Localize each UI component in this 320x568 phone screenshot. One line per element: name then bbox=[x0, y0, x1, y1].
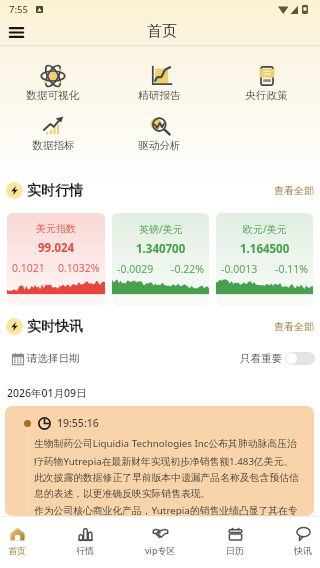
button[interactable]: 快讯 bbox=[293, 527, 313, 556]
staticText: -0.0029 bbox=[117, 262, 154, 276]
staticText: 2026年01月09日 bbox=[7, 386, 87, 400]
button[interactable]: 欧元/美元 bbox=[216, 213, 313, 306]
staticText: 请选择日期 bbox=[27, 352, 80, 365]
staticText: 0.1032% bbox=[58, 261, 100, 275]
staticText: 99.024 bbox=[38, 240, 75, 256]
button[interactable]: 请选择日期 bbox=[12, 352, 80, 365]
button[interactable]: 央行政策 bbox=[213, 66, 320, 102]
staticText: 1.164500 bbox=[240, 241, 290, 257]
button[interactable]: Menu bbox=[4, 20, 28, 44]
staticText: 数据指标 bbox=[32, 139, 75, 152]
staticText: 首页 bbox=[147, 22, 177, 41]
button[interactable]: 日历 bbox=[225, 527, 245, 556]
staticText: 快讯 bbox=[294, 545, 312, 556]
staticText: vip专区 bbox=[145, 544, 176, 556]
button[interactable]: 数据指标 bbox=[0, 116, 106, 152]
staticText: -0.0013 bbox=[221, 262, 258, 276]
staticText: 数据可视化 bbox=[26, 89, 80, 102]
button[interactable]: 19:55:16 bbox=[5, 406, 314, 516]
button[interactable]: 美元指数 bbox=[7, 213, 105, 306]
staticText: 驱动分析 bbox=[138, 139, 181, 152]
staticText: 央行政策 bbox=[245, 89, 288, 102]
staticText: -0.11% bbox=[275, 262, 308, 276]
button[interactable]: vip专区 bbox=[144, 526, 177, 556]
staticText: 生物制药公司Liquidia Technologies Inc公布其肺动脉高压治… bbox=[34, 437, 300, 516]
button[interactable]: 首页 bbox=[7, 527, 27, 556]
staticText: 7:55 bbox=[9, 3, 28, 16]
button[interactable]: 行情 bbox=[75, 527, 95, 556]
staticText: 欧元/美元 bbox=[243, 222, 287, 236]
staticText: 只看重要 bbox=[240, 352, 282, 365]
staticText: 19:55:16 bbox=[57, 416, 99, 430]
staticText: 精研报告 bbox=[138, 89, 181, 102]
button[interactable]: 查看全部 bbox=[274, 184, 314, 197]
staticText: 查看全部 bbox=[274, 320, 314, 333]
button[interactable]: 驱动分析 bbox=[106, 116, 213, 152]
staticText: 行情 bbox=[76, 545, 94, 556]
button[interactable]: 精研报告 bbox=[106, 66, 213, 102]
staticText: 首页 bbox=[8, 545, 26, 556]
staticText: 美元指数 bbox=[36, 222, 76, 235]
staticText: 英镑/美元 bbox=[139, 222, 183, 236]
staticText: 查看全部 bbox=[274, 184, 314, 197]
staticText: 0.1021 bbox=[12, 261, 45, 275]
staticText: 日历 bbox=[226, 545, 244, 556]
button[interactable]: 只看重要 bbox=[240, 352, 315, 365]
staticText: 1.340700 bbox=[136, 241, 186, 257]
staticText: -0.22% bbox=[171, 262, 204, 276]
button[interactable]: 查看全部 bbox=[274, 320, 314, 333]
button[interactable]: 英镑/美元 bbox=[112, 213, 209, 306]
button[interactable]: 数据可视化 bbox=[0, 66, 106, 102]
staticText: 实时快讯 bbox=[27, 318, 83, 335]
staticText: 实时行情 bbox=[27, 182, 83, 199]
